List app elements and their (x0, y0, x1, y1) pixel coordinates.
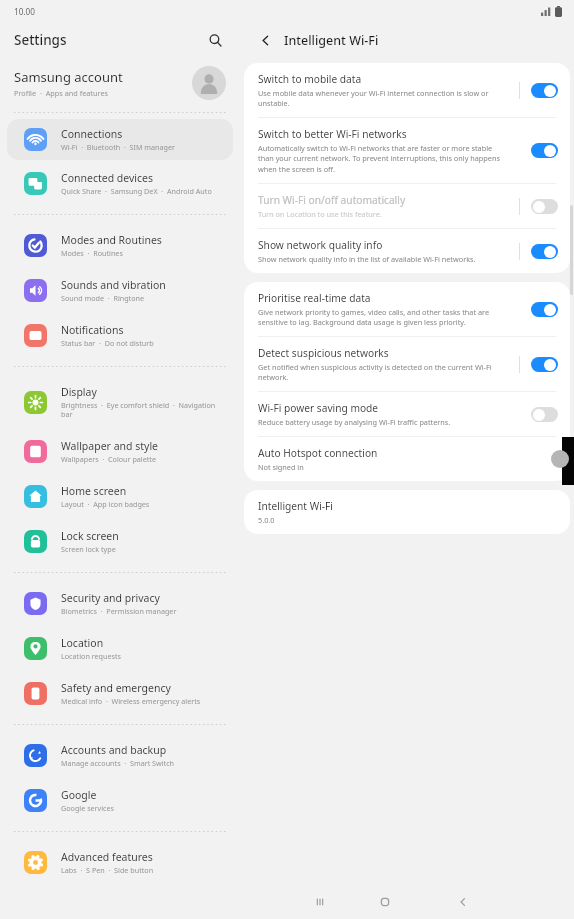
button[interactable]: Toggle (531, 83, 558, 98)
button[interactable]: Switch to mobile data (244, 63, 570, 117)
staticText: Lock screen (61, 529, 119, 543)
button[interactable]: Advanced features (7, 842, 233, 883)
staticText: Google (61, 788, 97, 802)
staticText: Advanced features (61, 850, 153, 864)
staticText: 10.00 (14, 6, 35, 17)
staticText: Switch to better Wi-Fi networks (258, 127, 407, 141)
staticText: Modes and Routines (61, 233, 162, 247)
button[interactable]: Wi-Fi power saving mode (244, 392, 570, 436)
button[interactable]: Lock screen (7, 521, 233, 562)
staticText: Status bar · Do not disturb (61, 338, 154, 348)
button[interactable]: Toggle (531, 357, 558, 372)
staticText: Google services (61, 803, 115, 813)
staticText: Get notified when suspicious activity is… (258, 362, 509, 382)
staticText: Labs · S Pen · Side button (61, 865, 154, 875)
staticText: Intelligent Wi-Fi (258, 499, 333, 513)
staticText: Location requests (61, 651, 121, 661)
staticText: Show network quality info (258, 238, 383, 252)
staticText: Show network quality info in the list of… (258, 254, 476, 264)
staticText: Use mobile data whenever your Wi-Fi inte… (258, 88, 509, 108)
button[interactable]: Accounts and backup (7, 735, 233, 776)
staticText: Sounds and vibration (61, 278, 166, 292)
button[interactable]: Switch to better Wi-Fi networks (244, 118, 570, 183)
staticText: Accounts and backup (61, 743, 167, 757)
button[interactable]: Safety and emergency (7, 673, 233, 714)
button[interactable]: Samsung account (0, 58, 240, 110)
button[interactable]: Turn Wi-Fi on/off automatically (244, 184, 570, 228)
button[interactable]: Toggle (531, 143, 558, 158)
button[interactable]: Recent apps (300, 885, 340, 919)
button[interactable]: Connections (7, 119, 233, 160)
button[interactable]: Intelligent Wi-Fi (244, 490, 570, 534)
staticText: Turn Wi-Fi on/off automatically (258, 193, 406, 207)
staticText: Switch to mobile data (258, 72, 362, 86)
button[interactable]: Auto Hotspot connection (244, 437, 570, 481)
button[interactable]: Connected devices (7, 163, 233, 204)
staticText: Home screen (61, 484, 127, 498)
staticText: Security and privacy (61, 591, 160, 605)
staticText: Samsung account (14, 68, 123, 86)
staticText: Location (61, 636, 104, 650)
button[interactable]: Toggle (531, 407, 558, 422)
button[interactable]: Toggle (531, 302, 558, 317)
staticText: Medical info · Wireless emergency alerts (61, 696, 201, 706)
staticText: Connected devices (61, 171, 154, 185)
staticText: Safety and emergency (61, 681, 171, 695)
button[interactable]: Wallpaper and style (7, 431, 233, 472)
staticText: Screen lock type (61, 544, 116, 554)
staticText: Settings (14, 31, 204, 49)
staticText: Not signed in (258, 462, 304, 472)
staticText: Profile · Apps and features (14, 88, 108, 98)
button[interactable]: Back (254, 29, 276, 51)
staticText: 5.0.0 (258, 515, 275, 525)
staticText: Modes · Routines (61, 248, 123, 258)
staticText: Wallpaper and style (61, 439, 159, 453)
button[interactable]: Show network quality info (244, 229, 570, 273)
staticText: Give network priority to games, video ca… (258, 307, 509, 327)
staticText: Display (61, 385, 97, 399)
staticText: Wi-Fi power saving mode (258, 401, 379, 415)
staticText: Auto Hotspot connection (258, 446, 378, 460)
staticText: Layout · App icon badges (61, 499, 150, 509)
button[interactable]: Detect suspicious networks (244, 337, 570, 391)
button[interactable]: Toggle (531, 244, 558, 259)
button[interactable]: Display (7, 377, 233, 427)
button[interactable]: Search (204, 29, 226, 51)
staticText: Wallpapers · Colour palette (61, 454, 156, 464)
staticText: Brightness · Eye comfort shield · Naviga… (61, 400, 223, 419)
button[interactable]: Modes and Routines (7, 225, 233, 266)
staticText: Detect suspicious networks (258, 346, 389, 360)
button[interactable]: Prioritise real-time data (244, 282, 570, 336)
staticText: Reduce battery usage by analysing Wi-Fi … (258, 417, 451, 427)
button[interactable]: Location (7, 628, 233, 669)
staticText: Notifications (61, 323, 124, 337)
button[interactable]: Toggle (531, 199, 558, 214)
button[interactable]: Notifications (7, 315, 233, 356)
button[interactable]: Security and privacy (7, 583, 233, 624)
staticText: Biometrics · Permission manager (61, 606, 177, 616)
button[interactable]: Sounds and vibration (7, 270, 233, 311)
button[interactable]: Home (365, 885, 405, 919)
staticText: Automatically switch to Wi-Fi networks t… (258, 143, 509, 174)
staticText: Connections (61, 127, 123, 141)
button[interactable]: Back (443, 885, 483, 919)
button[interactable]: Home screen (7, 476, 233, 517)
staticText: Manage accounts · Smart Switch (61, 758, 175, 768)
button[interactable]: Google (7, 780, 233, 821)
staticText: Prioritise real-time data (258, 291, 371, 305)
staticText: Quick Share · Samsung DeX · Android Auto (61, 186, 212, 196)
staticText: Sound mode · Ringtone (61, 293, 145, 303)
staticText: Intelligent Wi-Fi (284, 32, 379, 49)
staticText: Wi-Fi · Bluetooth · SIM manager (61, 142, 176, 152)
staticText: Turn on Location to use this feature. (258, 209, 382, 219)
